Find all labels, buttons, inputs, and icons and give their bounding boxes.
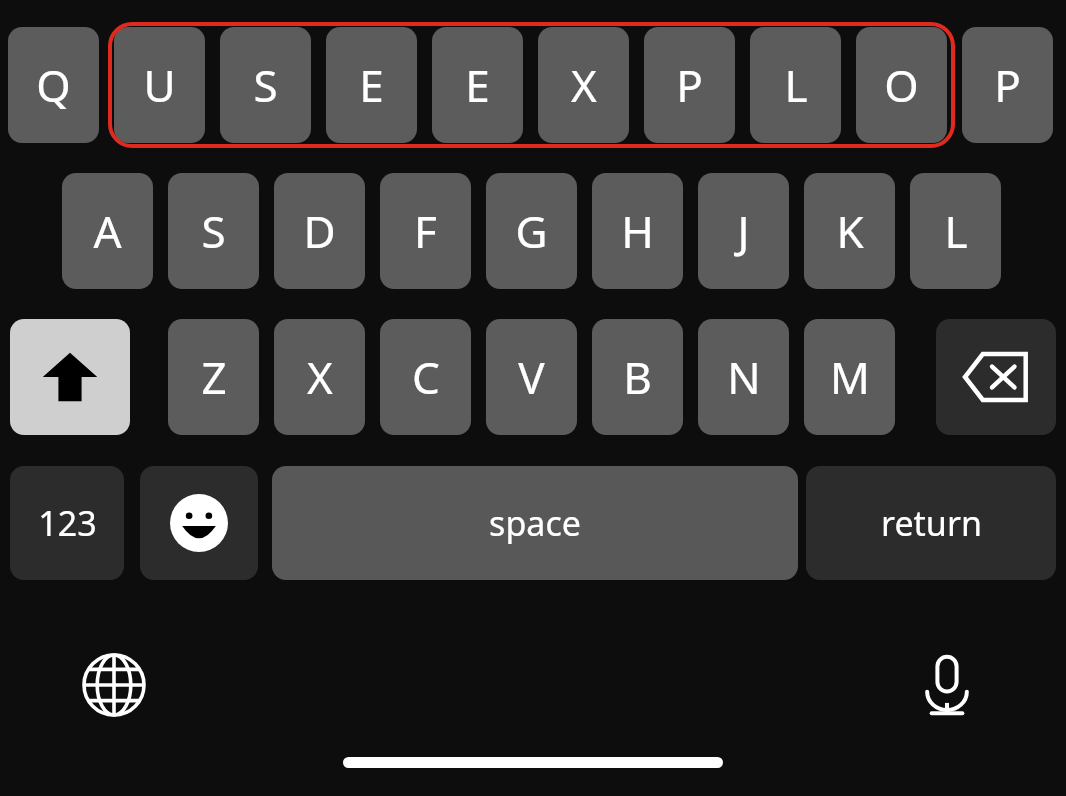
button[interactable]: X bbox=[274, 319, 365, 435]
button[interactable]: M bbox=[804, 319, 895, 435]
button[interactable]: O bbox=[856, 27, 947, 143]
button[interactable]: S bbox=[168, 173, 259, 289]
staticText: E bbox=[359, 55, 384, 115]
staticText: V bbox=[518, 347, 545, 407]
staticText: U bbox=[143, 55, 176, 115]
button[interactable]: B bbox=[592, 319, 683, 435]
staticText: O bbox=[884, 55, 919, 115]
staticText: S bbox=[253, 55, 278, 115]
staticText: N bbox=[727, 347, 761, 407]
button[interactable]: H bbox=[592, 173, 683, 289]
staticText: return bbox=[881, 500, 982, 546]
staticText: A bbox=[93, 201, 122, 261]
staticText: space bbox=[489, 500, 581, 546]
button[interactable]: L bbox=[910, 173, 1001, 289]
staticText: S bbox=[201, 201, 226, 261]
staticText: 123 bbox=[38, 500, 97, 546]
button[interactable]: Q bbox=[8, 27, 99, 143]
staticText: F bbox=[414, 201, 437, 261]
staticText: L bbox=[944, 201, 968, 261]
button[interactable]: C bbox=[380, 319, 471, 435]
staticText: X bbox=[307, 347, 333, 407]
button[interactable]: D bbox=[274, 173, 365, 289]
staticText: M bbox=[830, 347, 870, 407]
staticText: E bbox=[465, 55, 490, 115]
staticText: J bbox=[737, 201, 750, 261]
button[interactable]: P bbox=[962, 27, 1053, 143]
button[interactable]: space bbox=[272, 466, 798, 580]
button[interactable]: return bbox=[806, 466, 1056, 580]
button[interactable]: Z bbox=[168, 319, 259, 435]
button[interactable]: P bbox=[644, 27, 735, 143]
button[interactable]: V bbox=[486, 319, 577, 435]
button[interactable]: Change keyboard language bbox=[80, 651, 148, 719]
staticText: C bbox=[412, 347, 440, 407]
button[interactable]: S bbox=[220, 27, 311, 143]
button[interactable]: K bbox=[804, 173, 895, 289]
staticText: K bbox=[836, 201, 864, 261]
button[interactable]: Emoji bbox=[140, 466, 258, 580]
button[interactable]: E bbox=[326, 27, 417, 143]
staticText: X bbox=[571, 55, 597, 115]
staticText: B bbox=[623, 347, 652, 407]
staticText: G bbox=[515, 201, 548, 261]
staticText: H bbox=[621, 201, 654, 261]
staticText: P bbox=[994, 55, 1021, 115]
button[interactable]: N bbox=[698, 319, 789, 435]
button[interactable]: L bbox=[750, 27, 841, 143]
staticText: Q bbox=[36, 55, 71, 115]
button[interactable]: Backspace bbox=[936, 319, 1056, 435]
staticText: P bbox=[676, 55, 703, 115]
button[interactable]: Shift bbox=[10, 319, 130, 435]
staticText: D bbox=[303, 201, 336, 261]
button[interactable]: 123 bbox=[10, 466, 124, 580]
staticText: L bbox=[784, 55, 808, 115]
staticText: Z bbox=[201, 347, 227, 407]
button[interactable]: G bbox=[486, 173, 577, 289]
button[interactable]: A bbox=[62, 173, 153, 289]
button[interactable]: E bbox=[432, 27, 523, 143]
button[interactable]: J bbox=[698, 173, 789, 289]
button[interactable]: Dictation bbox=[913, 651, 981, 719]
button[interactable]: F bbox=[380, 173, 471, 289]
button[interactable]: X bbox=[538, 27, 629, 143]
button[interactable]: U bbox=[114, 27, 205, 143]
